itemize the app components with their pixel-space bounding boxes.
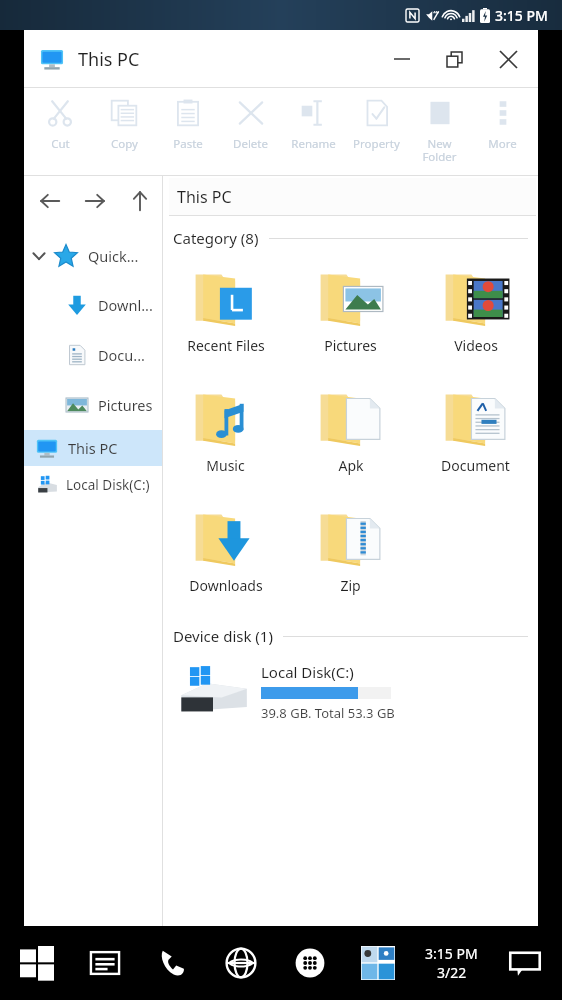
staticText: Zip [340, 576, 361, 595]
staticText: 3:15 PM [495, 6, 548, 25]
button[interactable]: More [471, 88, 534, 176]
button[interactable]: Pictures [24, 380, 162, 430]
button[interactable]: Videos [413, 254, 538, 374]
button[interactable]: Delete [219, 88, 282, 176]
staticText: 3:15 PM [425, 944, 478, 963]
button[interactable]: Quick... [24, 232, 162, 280]
staticText: Local Disk(C:) [261, 662, 354, 682]
button[interactable]: Up [117, 176, 162, 226]
button[interactable]: Zip [288, 494, 413, 614]
button[interactable]: New Folder [408, 88, 471, 176]
button[interactable]: Document [413, 374, 538, 494]
button[interactable]: Minimize [380, 37, 424, 81]
staticText: Music [206, 456, 245, 475]
staticText: Rename [291, 136, 336, 152]
button[interactable]: Cut [28, 88, 92, 176]
staticText: Downl... [98, 295, 153, 315]
button[interactable]: Restore [432, 37, 476, 81]
button[interactable]: Downloads [163, 494, 288, 614]
button[interactable]: Copy [92, 88, 156, 176]
staticText: Property [353, 136, 400, 152]
button[interactable]: Local Disk(C:) [163, 656, 538, 728]
button[interactable]: Music [163, 374, 288, 494]
staticText: Apk [338, 456, 364, 475]
staticText: This PC [177, 186, 232, 208]
staticText: Cut [51, 136, 70, 152]
button[interactable]: Close [484, 35, 532, 83]
staticText: 3/22 [437, 963, 467, 982]
button[interactable]: This PC [24, 430, 162, 466]
button[interactable]: Forward [72, 176, 117, 226]
staticText: Pictures [324, 336, 377, 355]
button[interactable]: Explorer [82, 940, 128, 986]
staticText: Downloads [189, 576, 263, 595]
button[interactable]: Rename [282, 88, 345, 176]
button[interactable]: Apk [288, 374, 413, 494]
button[interactable]: Downl... [24, 280, 162, 330]
button[interactable]: 3:15 PM [423, 944, 480, 982]
button[interactable]: Pictures [288, 254, 413, 374]
staticText: Docu... [98, 345, 145, 365]
button[interactable]: Back [28, 176, 72, 226]
staticText: Pictures [98, 395, 153, 415]
staticText: Document [441, 456, 510, 475]
staticText: More [488, 136, 517, 152]
staticText: Device disk (1) [173, 626, 273, 646]
staticText: Quick... [88, 246, 139, 266]
button[interactable]: Docu... [24, 330, 162, 380]
staticText: Delete [233, 136, 268, 152]
staticText: Local Disk(C:) [66, 476, 150, 494]
button[interactable]: Notifications [502, 940, 548, 986]
button[interactable]: Apps [287, 940, 333, 986]
button[interactable]: Paste [156, 88, 219, 176]
button[interactable]: Property [345, 88, 408, 176]
button[interactable]: Browser [218, 940, 264, 986]
staticText: Recent Files [187, 336, 265, 355]
staticText: This PC [78, 47, 140, 72]
button[interactable]: Recent Files [163, 254, 288, 374]
staticText: Videos [454, 336, 498, 355]
staticText: Paste [173, 136, 203, 152]
staticText: Category (8) [173, 228, 259, 248]
staticText: 39.8 GB. Total 53.3 GB [261, 704, 395, 722]
staticText: New Folder [422, 136, 457, 165]
button[interactable]: Tray [355, 940, 401, 986]
staticText: This PC [68, 438, 118, 458]
button[interactable]: Local Disk(C:) [24, 466, 162, 504]
button[interactable]: Phone [150, 940, 196, 986]
staticText: Copy [111, 136, 138, 152]
button[interactable]: Start [14, 940, 60, 986]
